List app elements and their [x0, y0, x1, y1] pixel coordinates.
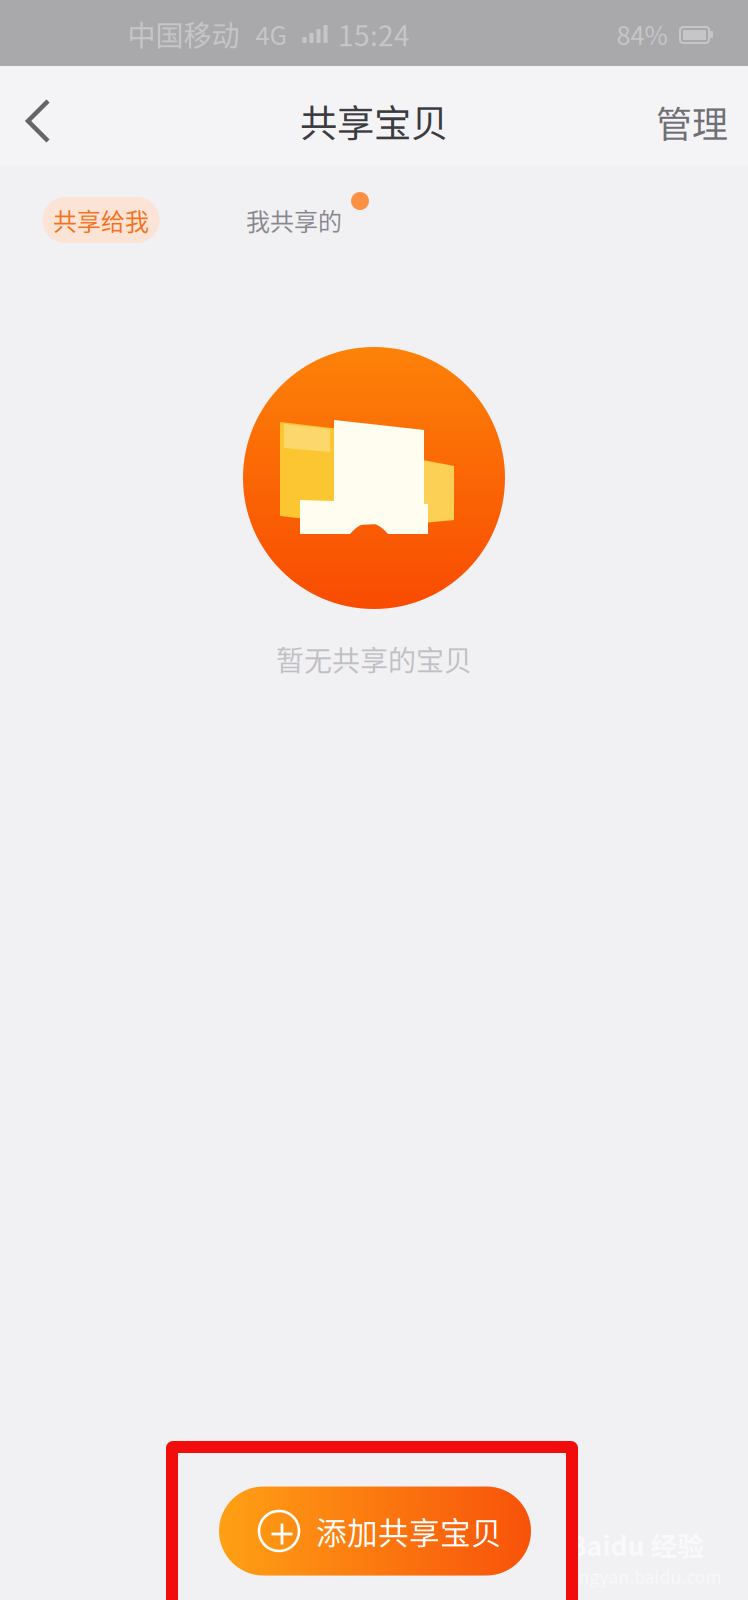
staticText: 共享给我	[53, 203, 149, 237]
staticText: 4G	[255, 16, 286, 52]
staticText: Baidu 经验	[568, 1525, 704, 1564]
staticText: 共享宝贝	[300, 94, 448, 148]
button[interactable]: 管理	[637, 79, 747, 165]
staticText: 添加共享宝贝	[316, 1509, 502, 1553]
button[interactable]: 添加共享宝贝	[219, 1486, 531, 1575]
staticText: 管理	[656, 96, 728, 148]
staticText: 暂无共享的宝贝	[276, 639, 472, 679]
staticText: jingyan.baidu.com	[568, 1564, 721, 1589]
button[interactable]: 我共享的	[228, 193, 360, 247]
staticText: 中国移动	[127, 14, 239, 54]
button[interactable]: 返回	[0, 77, 76, 165]
staticText: 我共享的	[246, 203, 342, 237]
staticText: 84%	[616, 16, 667, 52]
button[interactable]: 共享给我	[42, 197, 159, 243]
staticText: 15:24	[338, 14, 410, 54]
